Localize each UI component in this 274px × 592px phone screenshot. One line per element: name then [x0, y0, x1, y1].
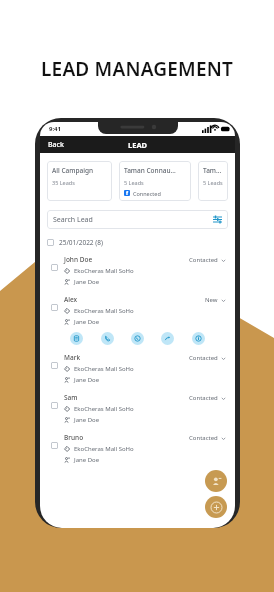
staticText: Jane Doe — [74, 376, 100, 384]
button[interactable]: Select — [51, 304, 58, 311]
staticText: 5 Leads — [124, 179, 144, 186]
button[interactable]: Contacted — [189, 394, 226, 402]
staticText: f — [126, 190, 129, 196]
button[interactable]: Select — [47, 393, 228, 424]
staticText: Contacted — [189, 256, 218, 264]
button[interactable]: Note — [70, 332, 83, 345]
staticText: Contacted — [189, 354, 218, 362]
button[interactable]: All Campaign — [47, 161, 112, 201]
button[interactable]: WhatsApp — [131, 332, 144, 345]
button[interactable]: New — [205, 296, 226, 304]
staticText: Jane Doe — [74, 318, 100, 326]
staticText: Jane Doe — [74, 278, 100, 286]
staticText: 5 Leads — [203, 179, 223, 186]
button[interactable]: Contacted — [189, 256, 226, 264]
staticText: Alex — [64, 295, 78, 304]
button[interactable]: Call — [101, 332, 114, 345]
button[interactable]: Search Lead — [47, 210, 228, 229]
button[interactable]: Taman — [198, 161, 228, 201]
button[interactable]: Select — [51, 402, 58, 409]
staticText: Back — [48, 140, 64, 150]
staticText: LEAD MANAGEMENT — [41, 56, 233, 82]
button[interactable]: Select — [47, 237, 228, 248]
staticText: Taman — [203, 166, 223, 175]
button[interactable]: Select — [51, 362, 58, 369]
staticText: EkoCheras Mall SoHo — [74, 365, 134, 373]
button[interactable]: Back — [40, 138, 72, 152]
button[interactable]: Select — [51, 264, 58, 271]
staticText: EkoCheras Mall SoHo — [74, 445, 134, 453]
staticText: EkoCheras Mall SoHo — [74, 405, 134, 413]
staticText: EkoCheras Mall SoHo — [74, 307, 134, 315]
button[interactable]: Select — [47, 239, 54, 246]
button[interactable]: Select — [47, 433, 228, 464]
staticText: 9:41 — [49, 125, 61, 133]
button[interactable]: Assign lead — [205, 470, 227, 492]
button[interactable]: Contacted — [189, 434, 226, 442]
staticText: Jane Doe — [74, 416, 100, 424]
button[interactable]: Select — [47, 255, 228, 286]
button[interactable]: Select — [47, 353, 228, 384]
button[interactable]: Select — [47, 295, 228, 326]
staticText: Jane Doe — [74, 456, 100, 464]
staticText: LEAD — [128, 140, 148, 150]
staticText: John Doe — [64, 255, 93, 264]
button[interactable]: Forward — [161, 332, 174, 345]
staticText: Connected — [133, 190, 161, 196]
staticText: Mark — [64, 353, 81, 362]
staticText: Taman Connau... — [124, 166, 176, 175]
staticText: EkoCheras Mall SoHo — [74, 267, 134, 275]
staticText: Contacted — [189, 394, 218, 402]
staticText: Contacted — [189, 434, 218, 442]
button[interactable]: Taman Connau... — [119, 161, 191, 201]
button[interactable]: Contacted — [189, 354, 226, 362]
button[interactable]: Select — [51, 442, 58, 449]
staticText: 25/01/2022 (8) — [59, 238, 103, 247]
staticText: Search Lead — [53, 215, 213, 225]
button[interactable]: Info — [192, 332, 205, 345]
staticText: Bruno — [64, 433, 84, 442]
staticText: All Campaign — [52, 166, 94, 175]
staticText: New — [205, 296, 218, 304]
button[interactable]: Add lead — [205, 496, 227, 518]
staticText: Sam — [64, 393, 78, 402]
staticText: 35 Leads — [52, 179, 75, 186]
